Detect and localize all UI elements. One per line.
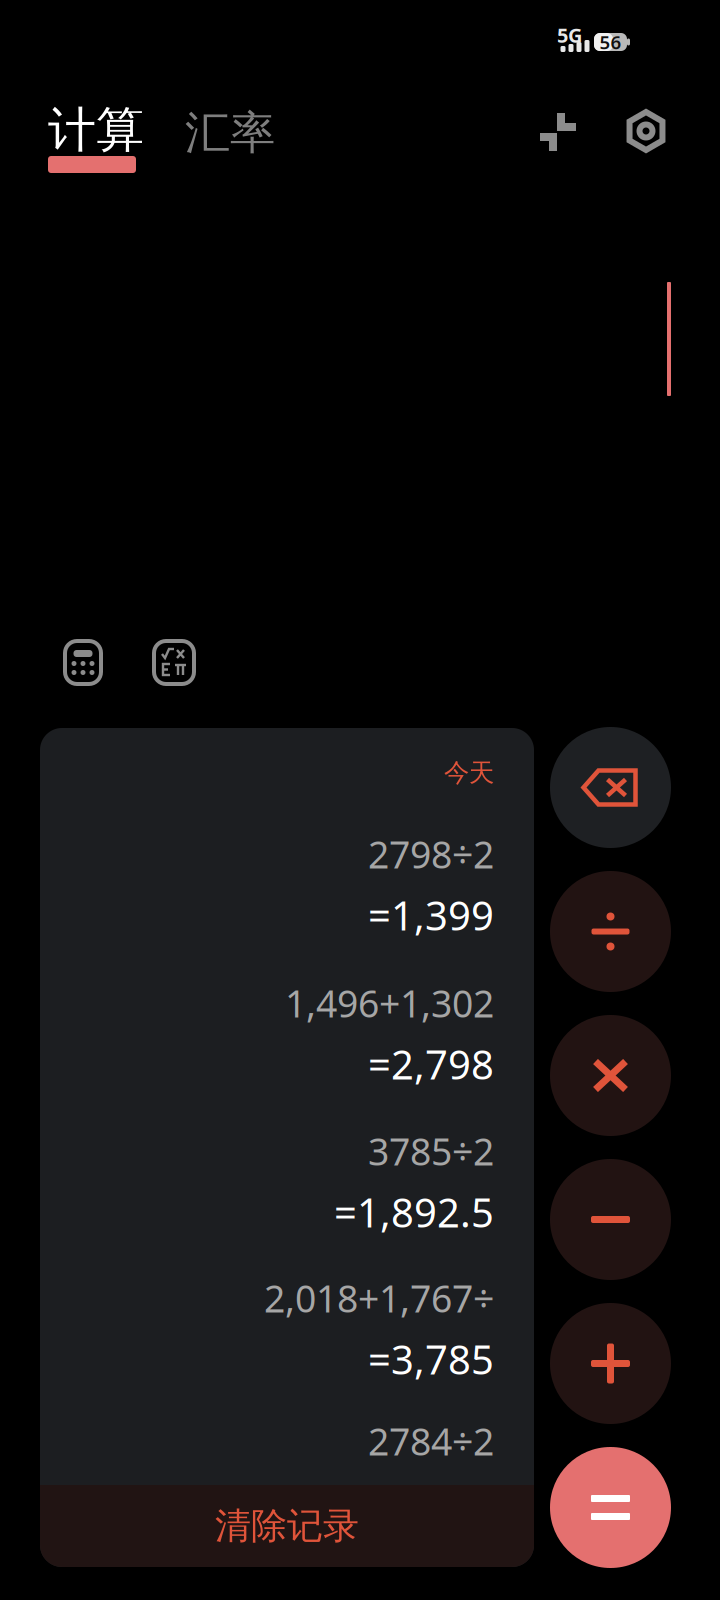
staticText: =3,785 (368, 1332, 494, 1385)
staticText: =1,399 (368, 888, 494, 941)
staticText: 计算 (48, 100, 144, 159)
button[interactable]: 3785÷2 (40, 1121, 494, 1229)
button[interactable]: Delete (550, 727, 671, 848)
button[interactable]: Add (550, 1303, 671, 1424)
staticText: 1,496+1,302 (285, 978, 494, 1028)
staticText: 5G (557, 22, 582, 48)
button[interactable]: 汇率 (185, 109, 275, 175)
button[interactable]: Settings (623, 108, 669, 154)
button[interactable]: 2,018+1,767÷ (40, 1268, 494, 1376)
button[interactable]: Scientific calculator (151, 638, 197, 687)
staticText: 2784÷2 (368, 1416, 494, 1466)
button[interactable]: Subtract (550, 1159, 671, 1280)
staticText: 2,018+1,767÷ (264, 1273, 494, 1323)
button[interactable]: Standard calculator (62, 638, 104, 687)
button[interactable]: 计算 (48, 106, 144, 174)
button[interactable]: Divide (550, 871, 671, 992)
staticText: =2,798 (368, 1037, 494, 1090)
button[interactable]: 1,496+1,302 (40, 973, 494, 1081)
staticText: 56 (599, 30, 621, 54)
button[interactable]: 2798÷2 (40, 824, 494, 932)
button[interactable]: Equals (550, 1447, 671, 1568)
button[interactable]: Multiply (550, 1015, 671, 1136)
staticText: 3785÷2 (368, 1126, 494, 1176)
staticText: 2798÷2 (368, 829, 494, 879)
staticText: =1,892.5 (334, 1185, 494, 1238)
staticText: 清除记录 (215, 1504, 359, 1548)
staticText: 汇率 (185, 105, 275, 161)
staticText: 今天 (444, 757, 494, 788)
button[interactable]: 清除记录 (40, 1485, 534, 1567)
button[interactable]: Collapse keypad (532, 104, 586, 158)
